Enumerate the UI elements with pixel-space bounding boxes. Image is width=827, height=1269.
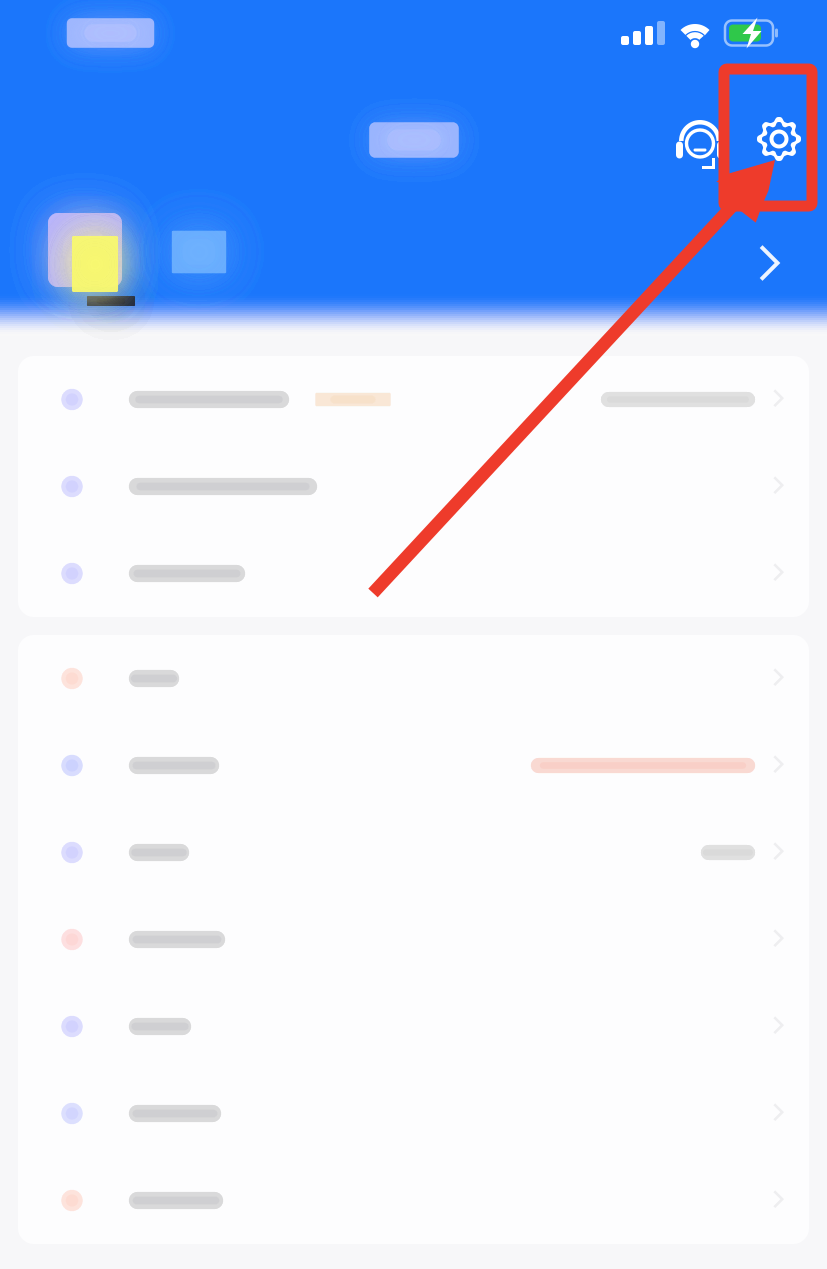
button[interactable] [18, 809, 809, 896]
button[interactable] [18, 983, 809, 1070]
button[interactable] [18, 722, 809, 809]
button[interactable] [18, 635, 809, 722]
button[interactable]: Profile details [762, 248, 781, 282]
button[interactable]: Customer service [674, 113, 726, 165]
button[interactable]: Settings [753, 113, 805, 165]
button[interactable] [18, 1157, 809, 1244]
button[interactable] [18, 1070, 809, 1157]
button[interactable] [18, 443, 809, 530]
button[interactable] [18, 896, 809, 983]
button[interactable] [18, 530, 809, 617]
button[interactable] [18, 356, 809, 443]
